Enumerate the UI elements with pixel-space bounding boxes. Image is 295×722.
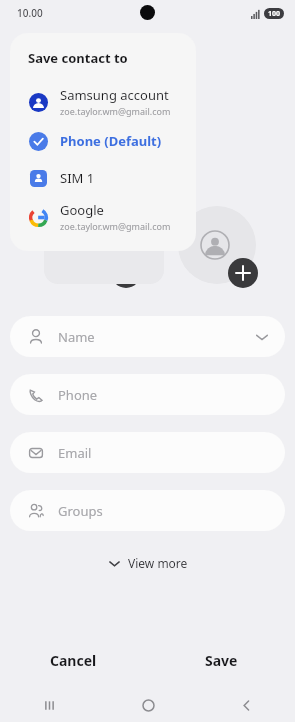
button[interactable]: Add — [111, 258, 141, 288]
staticText: Cancel — [50, 651, 97, 670]
staticText: Save contact to — [28, 49, 128, 67]
button[interactable]: Phone (Default) — [10, 122, 196, 159]
button[interactable]: Home — [99, 688, 197, 722]
button[interactable]: Email — [10, 432, 285, 473]
button[interactable]: SIM 1 — [10, 159, 196, 196]
button[interactable]: Groups — [10, 490, 285, 531]
button[interactable]: Samsung account — [10, 81, 196, 122]
button[interactable]: Google — [10, 196, 196, 237]
button[interactable]: Save — [147, 642, 295, 678]
button[interactable]: Add photo — [228, 258, 258, 288]
staticText: Google — [60, 201, 104, 219]
staticText: Groups — [58, 502, 103, 520]
staticText: 10.00 — [17, 6, 43, 20]
staticText: Phone — [58, 386, 98, 404]
staticText: Samsung account — [60, 86, 169, 104]
staticText: Email — [58, 444, 92, 462]
staticText: SIM 1 — [60, 169, 95, 187]
staticText: Save — [205, 651, 238, 670]
staticText: 100 — [268, 9, 281, 19]
staticText: zoe.taylor.wm@gmail.com — [60, 105, 171, 117]
staticText: zoe.taylor.wm@gmail.com — [60, 220, 171, 232]
staticText: Phone (Default) — [60, 132, 162, 150]
button[interactable]: Recents — [0, 688, 99, 722]
button[interactable]: Cancel — [0, 642, 147, 678]
staticText: Name — [58, 328, 95, 346]
button[interactable]: View more — [0, 549, 295, 577]
button[interactable]: Name — [10, 316, 285, 357]
button[interactable]: Phone — [10, 374, 285, 415]
button[interactable]: Back — [197, 688, 295, 722]
staticText: View more — [128, 555, 188, 571]
